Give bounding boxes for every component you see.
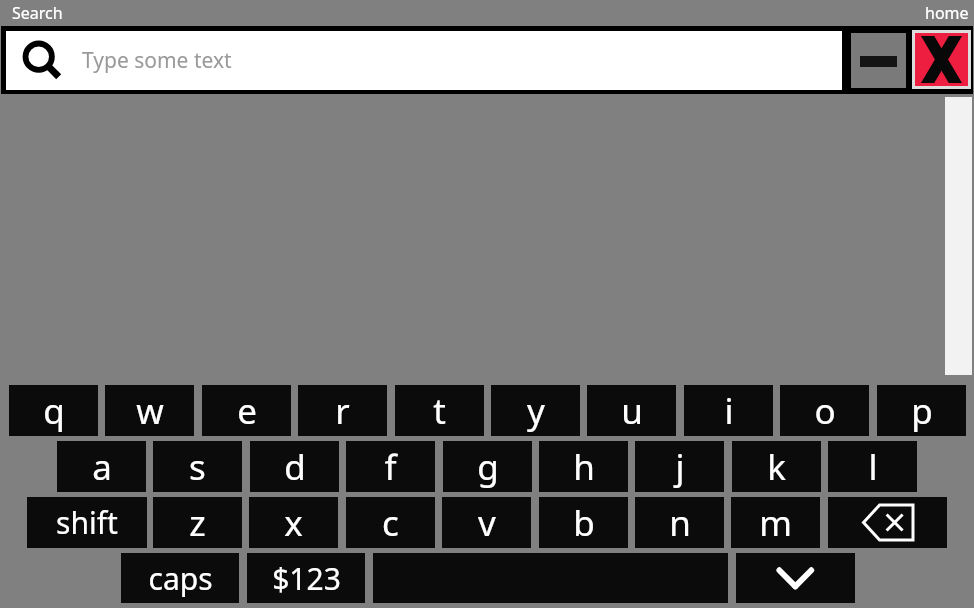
staticText: home (925, 2, 969, 24)
button[interactable]: home (912, 0, 974, 26)
staticText: k (767, 443, 786, 491)
staticText: r (335, 387, 350, 435)
button[interactable]: v (442, 497, 531, 548)
button[interactable]: d (250, 441, 339, 492)
staticText: y (527, 387, 545, 435)
staticText: h (573, 443, 595, 491)
staticText: m (759, 499, 792, 547)
staticText: x (284, 499, 303, 547)
staticText: o (814, 387, 836, 435)
button[interactable]: o (780, 385, 869, 436)
button[interactable]: caps (121, 553, 239, 603)
staticText: i (724, 387, 734, 435)
staticText: q (43, 387, 65, 435)
button[interactable]: m (731, 497, 820, 548)
staticText: f (384, 443, 397, 491)
button[interactable]: c (346, 497, 435, 548)
staticText: d (284, 443, 306, 491)
staticText: z (189, 499, 206, 547)
button[interactable]: Type some text (6, 31, 842, 90)
button[interactable]: s (153, 441, 242, 492)
button[interactable]: n (635, 497, 724, 548)
staticText: s (189, 443, 206, 491)
staticText: j (675, 443, 685, 491)
button[interactable]: Search (0, 0, 80, 26)
staticText: caps (148, 558, 213, 599)
button[interactable]: r (298, 385, 387, 436)
button[interactable]: e (202, 385, 291, 436)
button[interactable]: q (9, 385, 98, 436)
button[interactable]: k (732, 441, 821, 492)
button[interactable]: i (684, 385, 773, 436)
button[interactable]: b (539, 497, 628, 548)
staticText: a (92, 443, 112, 491)
staticText: p (911, 387, 933, 435)
button[interactable]: Close (912, 30, 971, 89)
button[interactable]: f (346, 441, 435, 492)
button[interactable]: h (539, 441, 628, 492)
button[interactable]: shift (27, 497, 147, 548)
button[interactable]: y (491, 385, 580, 436)
staticText: w (136, 387, 164, 435)
staticText: $123 (272, 558, 341, 599)
button[interactable]: x (249, 497, 338, 548)
button[interactable]: $123 (247, 553, 365, 603)
staticText: l (868, 443, 878, 491)
button[interactable]: a (57, 441, 146, 492)
button[interactable]: u (587, 385, 676, 436)
staticText: v (478, 499, 496, 547)
staticText: u (621, 387, 643, 435)
staticText: b (573, 499, 595, 547)
staticText: Search (12, 2, 63, 24)
staticText: shift (56, 502, 118, 543)
button[interactable]: g (443, 441, 532, 492)
button[interactable]: Minimize (851, 33, 906, 88)
button[interactable]: Hide keyboard (736, 553, 855, 603)
staticText: g (477, 443, 499, 491)
button[interactable]: w (105, 385, 194, 436)
staticText: t (433, 387, 446, 435)
staticText: c (382, 499, 399, 547)
button[interactable]: l (828, 441, 917, 492)
staticText: n (669, 499, 691, 547)
staticText: e (237, 387, 257, 435)
button[interactable]: z (153, 497, 242, 548)
button[interactable]: Backspace (828, 497, 947, 548)
button[interactable]: p (877, 385, 966, 436)
button[interactable]: t (395, 385, 484, 436)
staticText: Type some text (82, 46, 232, 75)
button[interactable]: j (635, 441, 724, 492)
